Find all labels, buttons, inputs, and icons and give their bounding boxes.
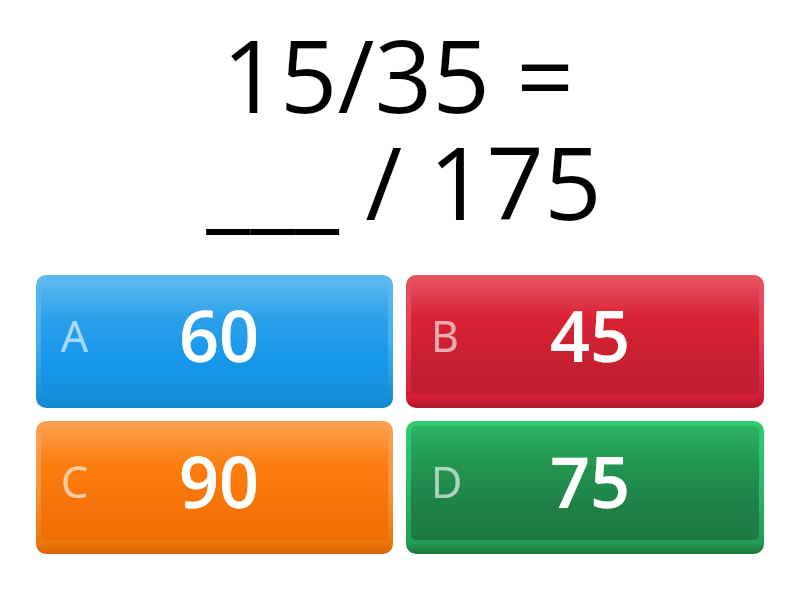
button[interactable]: C: [36, 421, 393, 554]
staticText: C: [61, 452, 89, 511]
staticText: B: [431, 306, 459, 365]
button[interactable]: A: [36, 275, 393, 408]
staticText: ___ / 175: [4, 112, 800, 250]
staticText: D: [431, 452, 463, 511]
staticText: A: [61, 306, 89, 365]
staticText: 90: [179, 433, 260, 528]
button[interactable]: B: [406, 275, 764, 408]
staticText: 75: [550, 433, 631, 528]
staticText: 60: [179, 287, 260, 382]
staticText: 15/35 =: [0, 5, 798, 143]
staticText: 45: [550, 287, 631, 382]
button[interactable]: D: [406, 421, 764, 554]
